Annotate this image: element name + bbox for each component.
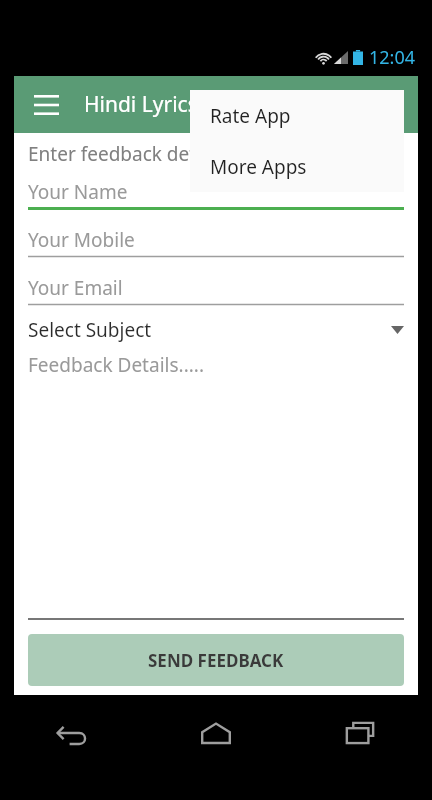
button[interactable]: Home: [192, 709, 240, 757]
staticText: Your Mobile: [28, 227, 135, 253]
staticText: Your Name: [28, 179, 128, 205]
button[interactable]: Recent apps: [336, 709, 384, 757]
staticText: Select Subject: [28, 317, 152, 343]
staticText: More Apps: [210, 154, 307, 180]
button[interactable]: Your Email: [28, 273, 404, 306]
button[interactable]: Rate App: [190, 90, 404, 141]
staticText: SEND FEEDBACK: [148, 649, 284, 672]
staticText: Hindi Lyrics: [84, 90, 198, 119]
staticText: Feedback Details.....: [28, 352, 204, 378]
button[interactable]: Your Mobile: [28, 225, 404, 258]
button[interactable]: Back: [48, 709, 96, 757]
button[interactable]: Your Name: [28, 177, 404, 210]
button[interactable]: More Apps: [190, 141, 404, 192]
button[interactable]: Select Subject: [28, 312, 404, 348]
staticText: Rate App: [210, 103, 291, 129]
staticText: 12:04: [369, 45, 416, 69]
button[interactable]: Open navigation drawer: [27, 86, 65, 124]
staticText: Your Email: [28, 275, 123, 301]
staticText: Enter feedback details to developer:: [28, 141, 349, 167]
button[interactable]: SEND FEEDBACK: [28, 634, 404, 686]
button[interactable]: Feedback Details.....: [28, 352, 404, 620]
